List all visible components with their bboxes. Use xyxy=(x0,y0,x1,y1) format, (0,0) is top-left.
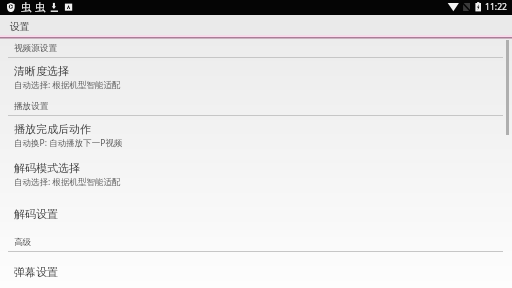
staticText: 视频源设置 xyxy=(14,43,57,54)
button[interactable]: 解码模式选择 xyxy=(0,155,512,194)
staticText: 播放完成后动作 xyxy=(14,122,91,136)
staticText: 弹幕设置 xyxy=(14,265,58,279)
staticText: 清晰度选择 xyxy=(14,64,69,78)
staticText: 自动选择: 根据机型智能适配 xyxy=(14,176,121,188)
button[interactable]: 清晰度选择 xyxy=(0,58,512,97)
staticText: 高级 xyxy=(14,237,32,248)
button[interactable]: 播放完成后动作 xyxy=(0,116,512,155)
staticText: 虫 xyxy=(21,1,32,14)
staticText: 解码设置 xyxy=(14,207,58,221)
staticText: 虫 xyxy=(35,1,46,14)
staticText: 解码模式选择 xyxy=(14,161,80,175)
staticText: 设置 xyxy=(10,21,30,33)
button[interactable]: 解码设置 xyxy=(0,194,512,233)
staticText: 自动换P: 自动播放下一P视频 xyxy=(14,137,123,149)
staticText: 播放设置 xyxy=(14,101,49,112)
staticText: 11:22 xyxy=(485,1,507,13)
button[interactable]: 弹幕设置 xyxy=(0,252,512,288)
staticText: 自动选择: 根据机型智能适配 xyxy=(14,79,121,91)
